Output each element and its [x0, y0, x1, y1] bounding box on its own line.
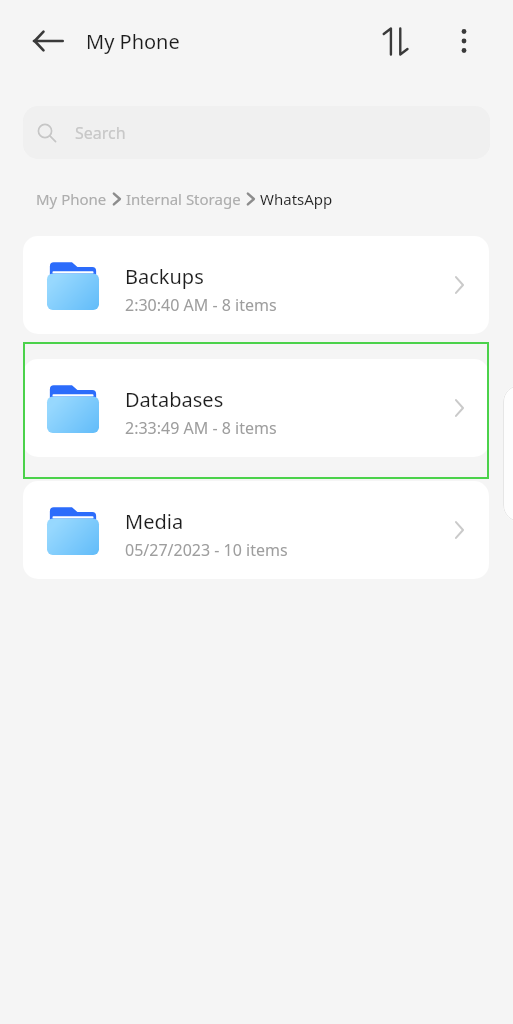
button[interactable]: Internal Storage	[126, 189, 241, 209]
button[interactable]: My Phone	[36, 189, 107, 209]
staticText: 05/27/2023 - 10 items	[125, 539, 288, 561]
button[interactable]: WhatsApp	[260, 189, 333, 209]
staticText: 2:33:49 AM - 8 items	[125, 417, 277, 439]
other: Selected item outline	[23, 342, 489, 479]
button[interactable]: Backups	[23, 236, 489, 334]
staticText: 2:30:40 AM - 8 items	[125, 294, 277, 316]
button[interactable]: Media	[23, 481, 489, 579]
button[interactable]: Back	[26, 19, 70, 63]
staticText: My Phone	[86, 28, 180, 55]
button[interactable]: Sort	[372, 18, 418, 64]
button[interactable]: Databases	[23, 359, 489, 457]
staticText: Search	[75, 122, 126, 144]
staticText: Databases	[125, 386, 224, 413]
button[interactable]: More options	[441, 18, 487, 64]
staticText: Backups	[125, 263, 204, 290]
staticText: Media	[125, 508, 184, 535]
button[interactable]: Search	[23, 106, 490, 159]
